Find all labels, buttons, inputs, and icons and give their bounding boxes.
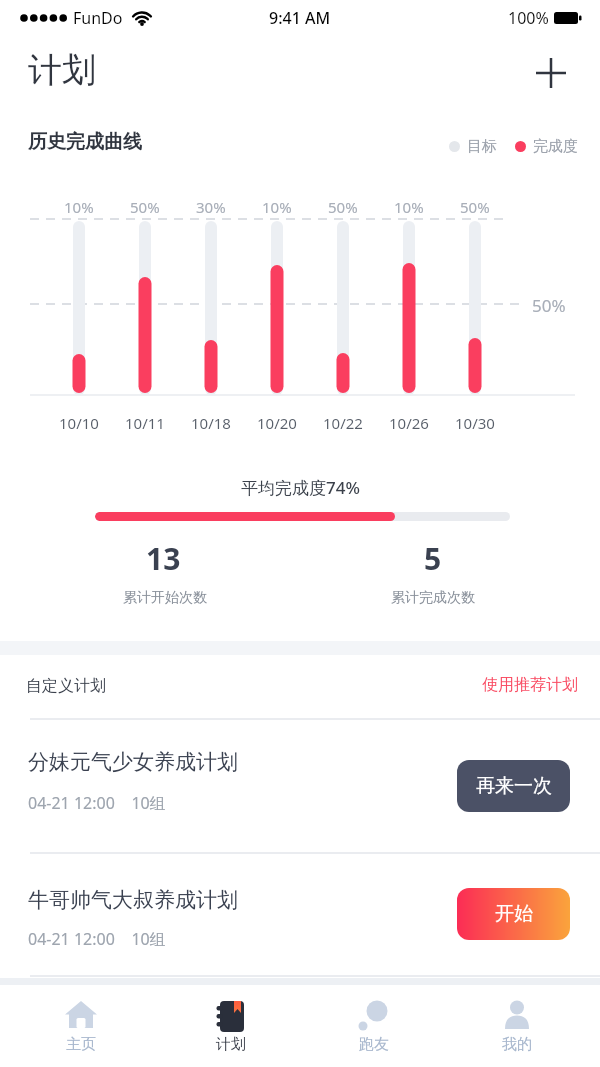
staticText: 主页: [66, 1035, 96, 1054]
staticText: 历史完成曲线: [28, 130, 142, 154]
button[interactable]: 我的: [472, 992, 562, 1062]
button[interactable]: [530, 52, 572, 94]
staticText: 目标: [467, 137, 497, 156]
staticText: 累计开始次数: [123, 589, 207, 607]
staticText: 50%: [328, 197, 358, 217]
staticText: 牛哥帅气大叔养成计划: [28, 887, 238, 913]
staticText: 10/30: [455, 413, 495, 433]
staticText: 累计完成次数: [391, 589, 475, 607]
button[interactable]: 再来一次: [457, 760, 570, 812]
staticText: 50%: [130, 197, 160, 217]
button[interactable]: 跑友: [329, 992, 419, 1062]
staticText: 10/22: [323, 413, 363, 433]
staticText: 10/18: [191, 413, 231, 433]
staticText: 自定义计划: [26, 676, 106, 696]
staticText: FunDo: [73, 7, 123, 29]
staticText: 开始: [495, 902, 533, 926]
staticText: 使用推荐计划: [482, 675, 578, 695]
staticText: 完成度: [533, 137, 578, 156]
staticText: 10/10: [59, 413, 99, 433]
staticText: 10/20: [257, 413, 297, 433]
button[interactable]: 使用推荐计划: [0, 670, 578, 700]
staticText: 计划: [216, 1035, 246, 1054]
staticText: 10%: [262, 197, 292, 217]
staticText: 04-21 12:00 10组: [28, 792, 166, 814]
staticText: 13: [146, 538, 181, 579]
staticText: 50%: [532, 294, 566, 317]
staticText: 5: [424, 538, 442, 579]
button[interactable]: 计划: [186, 992, 276, 1062]
staticText: 再来一次: [476, 774, 552, 798]
staticText: 50%: [460, 197, 490, 217]
staticText: 10%: [64, 197, 94, 217]
staticText: 跑友: [359, 1035, 389, 1054]
staticText: 100%: [508, 7, 549, 29]
staticText: 计划: [28, 49, 96, 92]
staticText: 平均完成度74%: [241, 476, 360, 499]
button[interactable]: 开始: [457, 888, 570, 940]
staticText: 9:41 AM: [269, 7, 331, 29]
staticText: 10%: [394, 197, 424, 217]
staticText: 04-21 12:00 10组: [28, 928, 166, 950]
staticText: 我的: [502, 1035, 532, 1054]
staticText: 分妹元气少女养成计划: [28, 749, 238, 775]
staticText: 10/26: [389, 413, 429, 433]
staticText: 10/11: [125, 413, 165, 433]
staticText: 30%: [196, 197, 226, 217]
button[interactable]: 主页: [36, 992, 126, 1062]
